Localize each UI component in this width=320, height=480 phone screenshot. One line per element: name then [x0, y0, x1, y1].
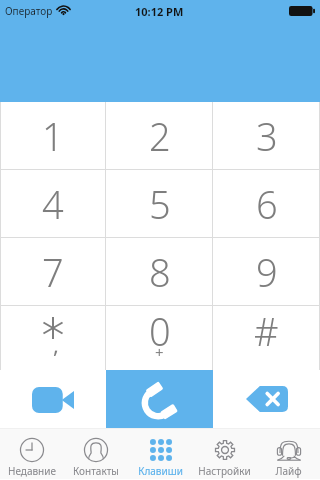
button[interactable]: Недавние — [0, 429, 64, 479]
button[interactable]: Клавиши — [128, 429, 192, 479]
button[interactable]: Video call — [0, 370, 106, 428]
button[interactable]: 1 — [0, 102, 106, 169]
button[interactable]: 6 — [213, 170, 320, 237]
button[interactable]: 3 — [213, 102, 320, 169]
button[interactable]: Контакты — [64, 429, 128, 479]
button[interactable]: , — [0, 306, 106, 370]
staticText: Настройки — [198, 464, 251, 478]
button[interactable]: 4 — [0, 170, 106, 237]
button[interactable]: 0 — [106, 306, 213, 370]
staticText: Лайф — [275, 464, 302, 478]
button[interactable]: 8 — [106, 238, 213, 305]
button[interactable]: 7 — [0, 238, 106, 305]
staticText: 0 — [149, 305, 171, 357]
button[interactable]: 5 — [106, 170, 213, 237]
button[interactable]: # — [213, 306, 320, 370]
staticText: 8 — [149, 246, 171, 298]
staticText: 10:12 PM — [135, 4, 184, 19]
button[interactable]: Настройки — [192, 429, 256, 479]
staticText: 9 — [256, 246, 278, 298]
staticText: , — [53, 329, 59, 359]
button[interactable]: 9 — [213, 238, 320, 305]
staticText: Недавние — [8, 464, 56, 478]
button[interactable]: 2 — [106, 102, 213, 169]
staticText: # — [254, 305, 279, 357]
staticText: 5 — [149, 178, 171, 230]
staticText: Оператор — [5, 4, 53, 18]
button[interactable]: Call — [106, 370, 213, 428]
staticText: + — [155, 342, 164, 362]
staticText: 3 — [256, 110, 278, 162]
staticText: 1 — [42, 110, 64, 162]
staticText: 6 — [256, 178, 278, 230]
staticText: 7 — [42, 246, 64, 298]
staticText: 2 — [149, 110, 171, 162]
staticText: Клавиши — [138, 464, 183, 478]
button[interactable]: Backspace — [213, 370, 320, 428]
button[interactable]: Лайф — [256, 429, 320, 479]
staticText: Контакты — [73, 464, 119, 478]
staticText: 4 — [42, 178, 64, 230]
